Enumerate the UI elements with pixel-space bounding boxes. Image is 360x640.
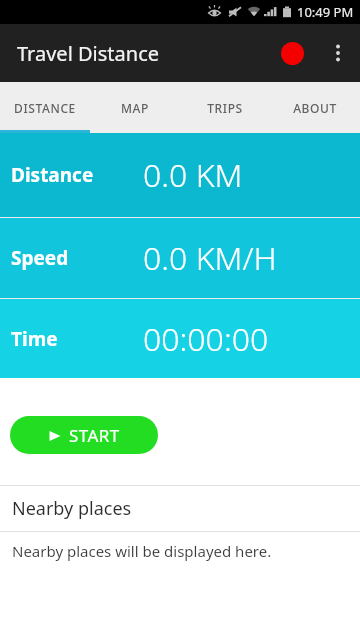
button[interactable]: Distance (0, 133, 360, 217)
button[interactable]: DISTANCE (0, 82, 90, 133)
staticText: 0.0 KM/H (143, 236, 277, 280)
staticText: TRIPS (207, 100, 243, 116)
staticText: Time (11, 326, 58, 352)
staticText: Nearby places (12, 496, 132, 521)
staticText: Distance (11, 162, 94, 188)
button[interactable]: TRIPS (180, 82, 270, 133)
button[interactable]: Time (0, 299, 360, 378)
staticText: Nearby places will be displayed here. (12, 541, 272, 561)
staticText: Travel Distance (17, 40, 160, 67)
staticText: MAP (121, 100, 149, 116)
staticText: ABOUT (293, 100, 337, 116)
staticText: 10:49 PM (297, 3, 354, 21)
button[interactable]: Nearby places (0, 486, 360, 531)
staticText: DISTANCE (14, 100, 76, 116)
button[interactable]: Record (268, 29, 316, 77)
button[interactable]: ABOUT (270, 82, 360, 133)
staticText: 0.0 KM (143, 153, 243, 197)
button[interactable]: START (10, 416, 158, 454)
staticText: Speed (11, 245, 69, 271)
staticText: START (69, 424, 120, 447)
staticText: 00:00:00 (143, 317, 269, 361)
button[interactable]: MAP (90, 82, 180, 133)
button[interactable]: More options (316, 31, 360, 75)
button[interactable]: Speed (0, 218, 360, 298)
